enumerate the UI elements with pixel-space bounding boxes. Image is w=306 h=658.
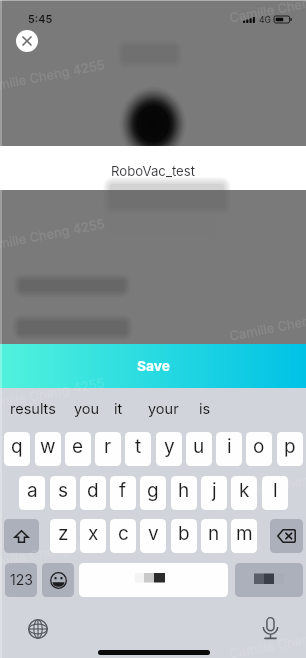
staticText: r: [104, 435, 112, 458]
staticText: g: [147, 479, 159, 502]
staticText: h: [178, 479, 190, 502]
staticText: RoboVac_test: [111, 163, 196, 179]
staticText: a: [27, 479, 38, 502]
button[interactable]: r: [95, 432, 121, 466]
button[interactable]: p: [277, 432, 303, 466]
button[interactable]: x: [80, 519, 106, 553]
button[interactable]: h: [171, 476, 197, 510]
button[interactable]: Shift: [4, 519, 39, 553]
button[interactable]: q: [4, 432, 30, 466]
button[interactable]: e: [65, 432, 91, 466]
staticText: u: [193, 435, 205, 458]
staticText: l: [273, 479, 278, 502]
staticText: k: [239, 479, 250, 502]
staticText: j: [212, 479, 217, 502]
button[interactable]: Close: [16, 30, 38, 52]
button[interactable]: j: [201, 476, 227, 510]
button[interactable]: Emoji: [42, 563, 74, 597]
staticText: s: [58, 479, 69, 502]
button[interactable]: results: [10, 400, 56, 418]
button[interactable]: v: [140, 519, 166, 553]
button[interactable]: m: [231, 519, 257, 553]
staticText: your: [148, 400, 179, 418]
button[interactable]: n: [201, 519, 227, 553]
button[interactable]: you: [74, 400, 100, 418]
staticText: t: [135, 435, 142, 458]
staticText: o: [253, 435, 265, 458]
staticText: i: [227, 435, 232, 458]
button[interactable]: i: [216, 432, 242, 466]
button[interactable]: c: [110, 519, 136, 553]
button[interactable]: 123: [5, 563, 37, 597]
staticText: p: [284, 435, 296, 458]
button[interactable]: Change keyboard: [28, 619, 48, 639]
button[interactable]: RoboVac_test: [0, 146, 306, 190]
staticText: e: [72, 435, 84, 458]
staticText: q: [11, 435, 23, 458]
button[interactable]: Save: [0, 344, 306, 388]
staticText: 123: [10, 571, 33, 588]
button[interactable]: Space: [79, 563, 228, 597]
staticText: is: [199, 400, 211, 418]
staticText: x: [88, 522, 99, 545]
staticText: n: [208, 522, 220, 545]
staticText: w: [40, 435, 56, 458]
button[interactable]: f: [110, 476, 136, 510]
button[interactable]: z: [50, 519, 76, 553]
button[interactable]: d: [80, 476, 106, 510]
button[interactable]: s: [50, 476, 76, 510]
button[interactable]: k: [231, 476, 257, 510]
staticText: c: [118, 522, 129, 545]
button[interactable]: it: [114, 400, 123, 418]
staticText: m: [236, 522, 253, 545]
button[interactable]: u: [186, 432, 212, 466]
staticText: f: [119, 479, 127, 502]
staticText: it: [114, 400, 123, 418]
staticText: y: [164, 435, 175, 458]
button[interactable]: Return: [235, 563, 303, 597]
button[interactable]: Dictation: [260, 613, 282, 643]
button[interactable]: Backspace: [270, 519, 303, 553]
staticText: results: [10, 400, 56, 418]
staticText: 5:45: [28, 13, 53, 26]
button[interactable]: w: [35, 432, 61, 466]
button[interactable]: b: [171, 519, 197, 553]
staticText: z: [58, 522, 69, 545]
button[interactable]: your: [148, 400, 179, 418]
button[interactable]: g: [140, 476, 166, 510]
staticText: d: [87, 479, 99, 502]
staticText: Save: [137, 358, 170, 375]
staticText: b: [178, 522, 190, 545]
button[interactable]: l: [262, 476, 288, 510]
staticText: 4G: [259, 15, 271, 24]
staticText: you: [74, 400, 100, 418]
button[interactable]: t: [125, 432, 151, 466]
button[interactable]: o: [246, 432, 272, 466]
button[interactable]: is: [199, 400, 211, 418]
staticText: v: [148, 522, 159, 545]
button[interactable]: a: [19, 476, 45, 510]
button[interactable]: y: [156, 432, 182, 466]
